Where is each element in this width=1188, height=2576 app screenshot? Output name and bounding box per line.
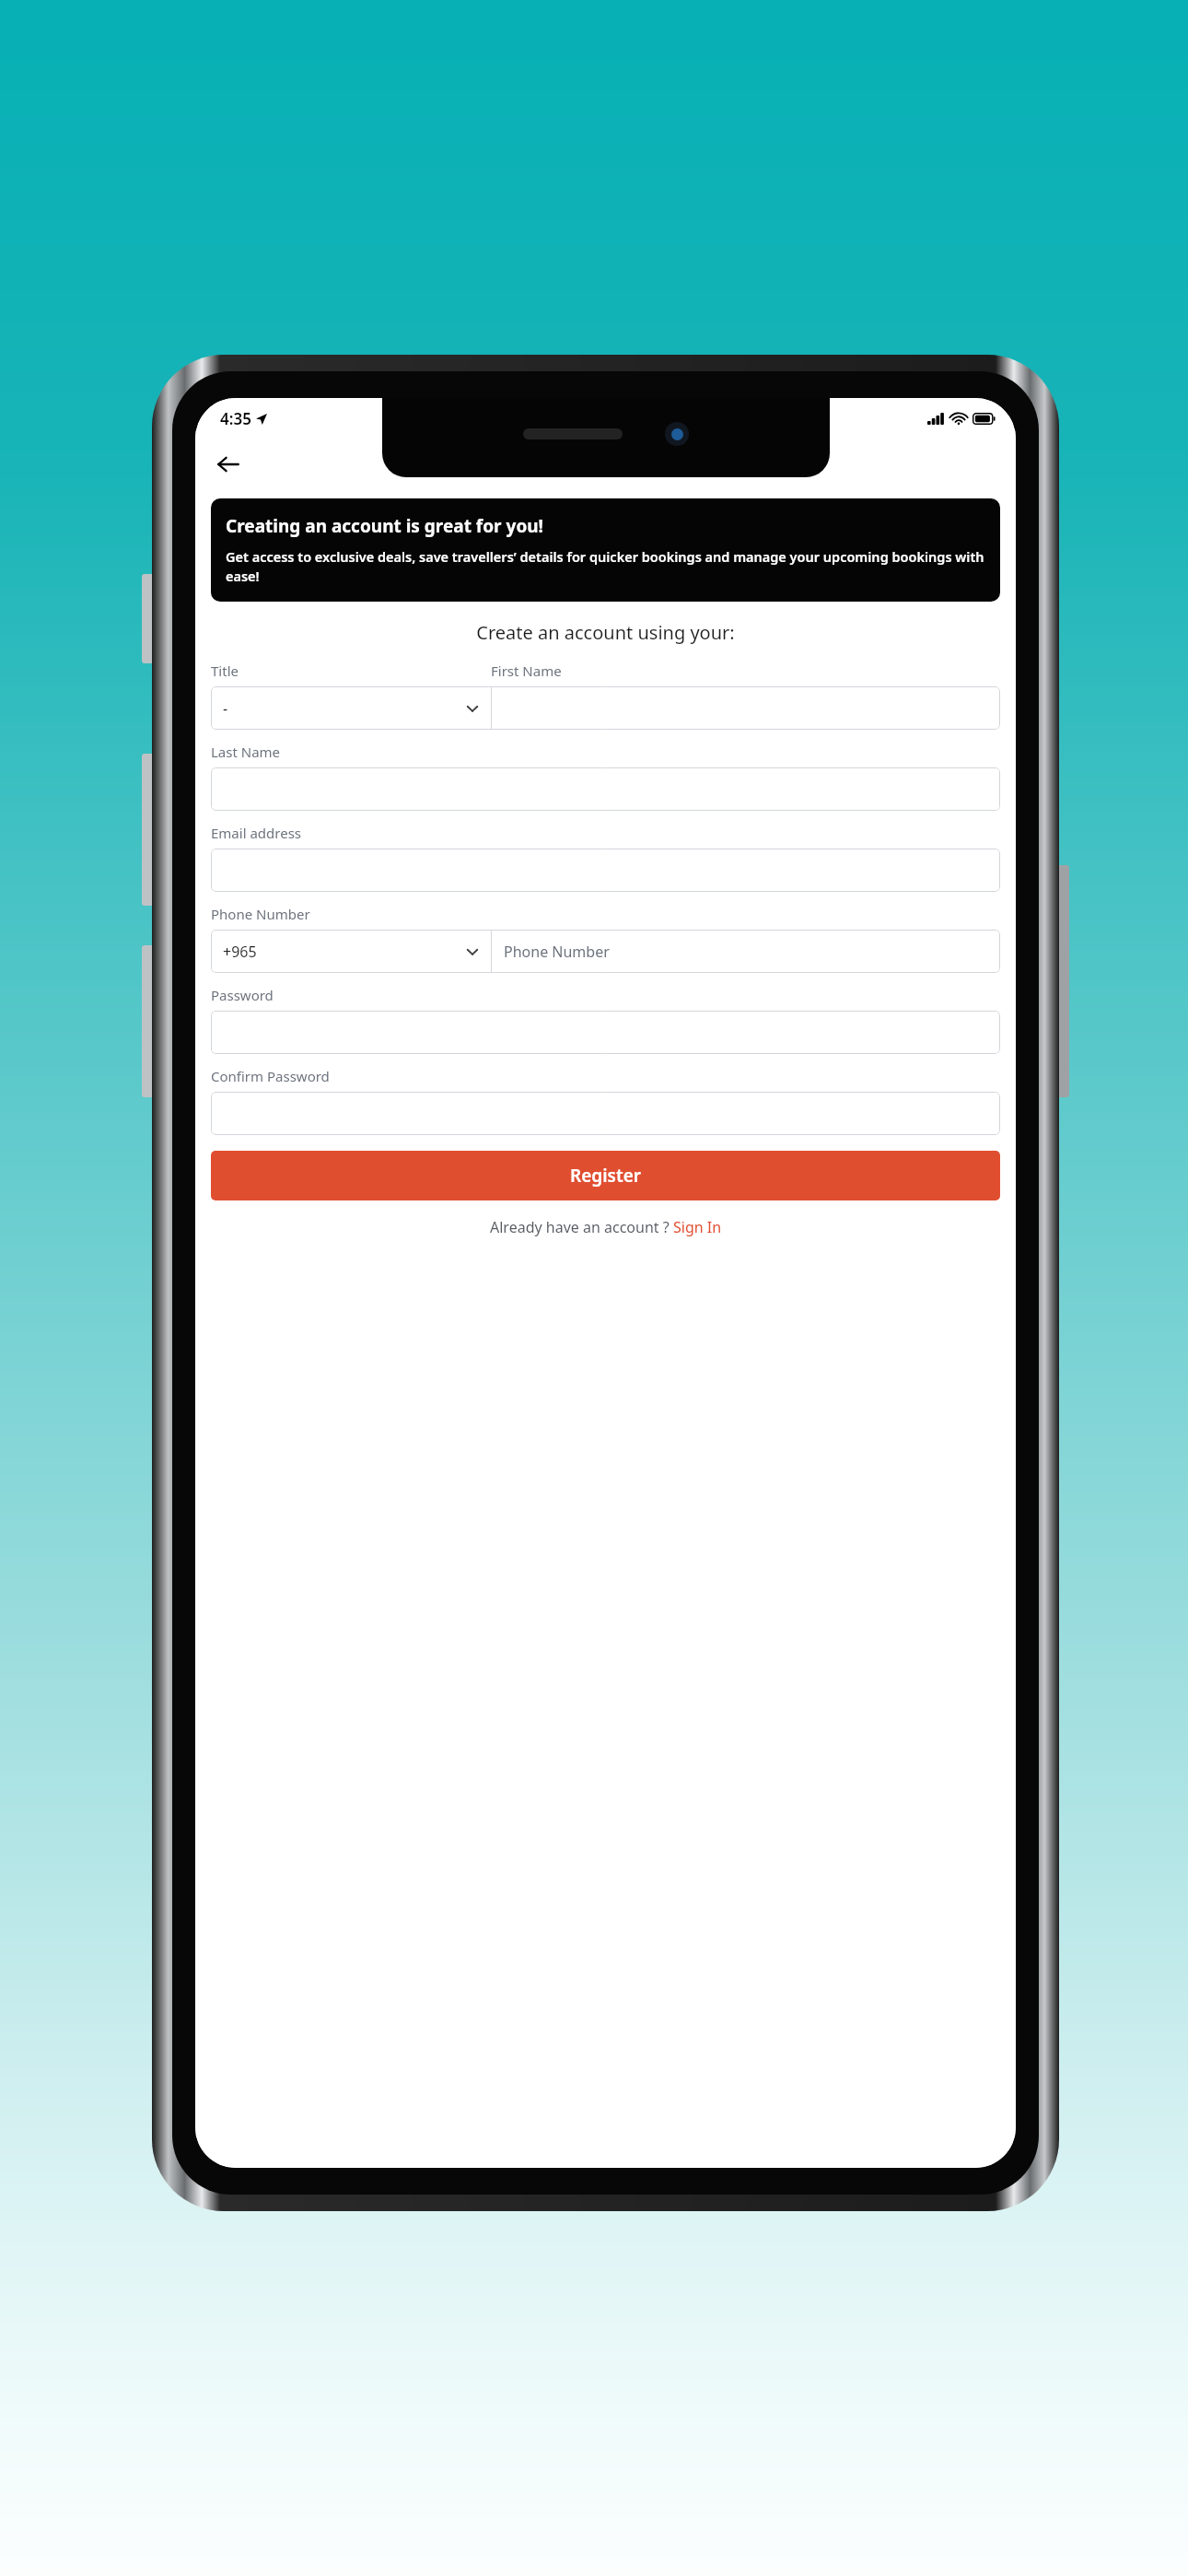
staticText: 4:35 (220, 408, 251, 429)
button[interactable]: Back (208, 444, 249, 485)
button[interactable] (211, 767, 1000, 811)
staticText: Sign In (673, 1217, 722, 1237)
staticText: Register (570, 1164, 642, 1188)
staticText: First Name (491, 662, 562, 680)
button[interactable]: Phone Number (492, 930, 1000, 973)
staticText: Title (211, 662, 239, 680)
staticText: Phone Number (504, 942, 610, 962)
staticText: Creating an account is great for you! (226, 514, 543, 538)
button[interactable]: Sign In (673, 1217, 722, 1237)
staticText: +965 (223, 942, 257, 962)
staticText: Last Name (211, 743, 281, 761)
staticText: Get access to exclusive deals, save trav… (226, 547, 985, 586)
button[interactable]: +965 (211, 930, 491, 973)
button[interactable] (211, 849, 1000, 892)
button[interactable]: - (211, 686, 491, 730)
button[interactable] (492, 686, 1000, 730)
button[interactable]: Register (211, 1151, 1000, 1200)
staticText: Already have an account ? (490, 1217, 673, 1237)
staticText: Phone Number (211, 905, 310, 923)
button[interactable] (211, 1011, 1000, 1054)
staticText: Confirm Password (211, 1067, 330, 1085)
staticText: Create an account using your: (211, 620, 1000, 645)
button[interactable] (211, 1092, 1000, 1135)
staticText: Email address (211, 824, 302, 842)
staticText: - (223, 698, 228, 719)
staticText: Password (211, 986, 274, 1004)
